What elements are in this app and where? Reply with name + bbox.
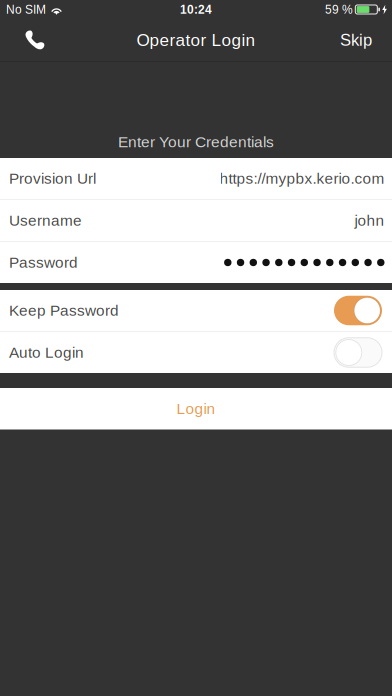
staticText: 59 % [325,3,353,16]
button[interactable]: Login [0,388,392,429]
staticText: Operator Login [136,30,255,49]
button[interactable]: Auto Login [0,332,392,373]
button[interactable]: Keep Password [0,290,392,331]
staticText: Auto Login [9,344,84,361]
staticText: Enter Your Credentials [118,133,274,151]
button[interactable]: Call [0,19,57,61]
staticText: No SIM [6,3,46,16]
button[interactable]: Skip [330,19,392,61]
staticText: 10:24 [180,3,212,16]
staticText: john [354,212,384,229]
staticText: Password [9,254,78,271]
staticText: Keep Password [9,302,119,319]
staticText: Skip [340,31,372,49]
staticText: Username [9,212,82,229]
staticText: https://mypbx.kerio.com [219,170,384,187]
staticText: Login [176,400,215,417]
staticText: Provision Url [9,170,96,187]
